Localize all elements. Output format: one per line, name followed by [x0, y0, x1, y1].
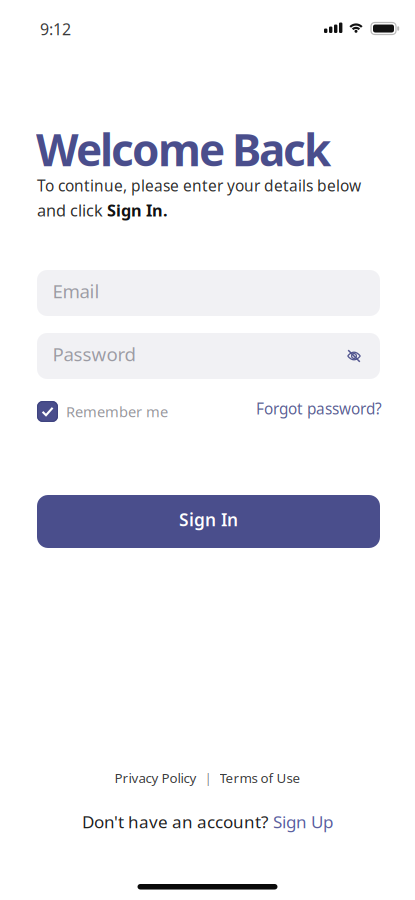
staticText: Password — [52, 342, 135, 366]
staticText: Terms of Use — [219, 769, 300, 787]
staticText: Don't have an account? — [82, 810, 268, 833]
staticText: Welcome Back — [36, 120, 331, 178]
staticText: | — [204, 769, 211, 787]
button[interactable]: Terms of Use — [219, 769, 300, 787]
button[interactable]: Privacy Policy — [114, 769, 196, 787]
staticText: and click — [37, 199, 107, 221]
staticText: Remember me — [66, 402, 168, 421]
staticText: Sign Up — [273, 810, 333, 833]
staticText: Privacy Policy — [114, 769, 196, 787]
button[interactable]: Sign In — [37, 495, 380, 548]
button[interactable]: Password — [37, 333, 380, 379]
button[interactable]: Sign Up — [273, 810, 333, 833]
staticText: Email — [52, 279, 99, 303]
button[interactable]: Remember me — [37, 401, 168, 422]
staticText: Sign In — [179, 508, 238, 531]
staticText: 9:12 — [40, 18, 71, 40]
staticText: To continue, please enter your details b… — [37, 175, 361, 196]
button[interactable]: Forgot password? — [256, 398, 382, 419]
staticText: Forgot password? — [256, 398, 382, 419]
button[interactable]: Email — [37, 270, 380, 316]
staticText: Sign In. — [107, 199, 168, 221]
